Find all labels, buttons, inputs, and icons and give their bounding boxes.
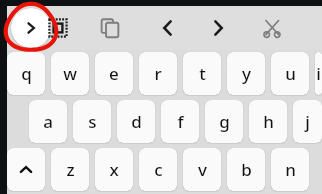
button[interactable]: r (139, 52, 177, 95)
staticText: n (285, 158, 296, 181)
button[interactable]: t (183, 52, 221, 95)
button[interactable]: i (315, 52, 322, 95)
button[interactable]: u (271, 52, 309, 95)
staticText: f (177, 110, 184, 133)
button[interactable]: g (205, 100, 243, 143)
staticText: q (21, 62, 32, 85)
staticText: i (316, 62, 321, 85)
staticText: e (109, 62, 119, 85)
staticText: b (241, 158, 252, 181)
staticText: a (43, 110, 53, 133)
button[interactable]: x (95, 148, 133, 191)
staticText: t (199, 62, 206, 85)
button[interactable]: e (95, 52, 133, 95)
button[interactable]: Expand toolbar (11, 8, 51, 48)
staticText: u (285, 62, 296, 85)
button[interactable]: Select all (40, 10, 76, 46)
button[interactable]: Copy (92, 10, 128, 46)
staticText: r (154, 62, 162, 85)
button[interactable]: f (161, 100, 199, 143)
staticText: g (219, 110, 230, 133)
button[interactable]: Cut (254, 10, 290, 46)
button[interactable]: a (29, 100, 67, 143)
button[interactable]: Move cursor right (200, 10, 236, 46)
button[interactable]: h (249, 100, 287, 143)
button[interactable]: s (73, 100, 111, 143)
button[interactable]: b (227, 148, 265, 191)
staticText: j (305, 110, 310, 133)
button[interactable]: n (271, 148, 309, 191)
staticText: h (263, 110, 274, 133)
staticText: v (198, 158, 207, 181)
staticText: s (88, 110, 97, 133)
staticText: c (154, 158, 163, 181)
button[interactable]: z (51, 148, 89, 191)
staticText: z (66, 158, 75, 181)
button[interactable]: q (7, 52, 45, 95)
staticText: w (63, 62, 77, 85)
button[interactable]: j (293, 100, 322, 143)
button[interactable]: y (227, 52, 265, 95)
staticText: y (242, 62, 251, 85)
staticText: x (109, 158, 119, 181)
button[interactable]: Shift (7, 148, 45, 191)
button[interactable]: c (139, 148, 177, 191)
button[interactable]: Move cursor left (150, 10, 186, 46)
staticText: d (131, 110, 142, 133)
button[interactable]: d (117, 100, 155, 143)
button[interactable]: w (51, 52, 89, 95)
button[interactable]: v (183, 148, 221, 191)
